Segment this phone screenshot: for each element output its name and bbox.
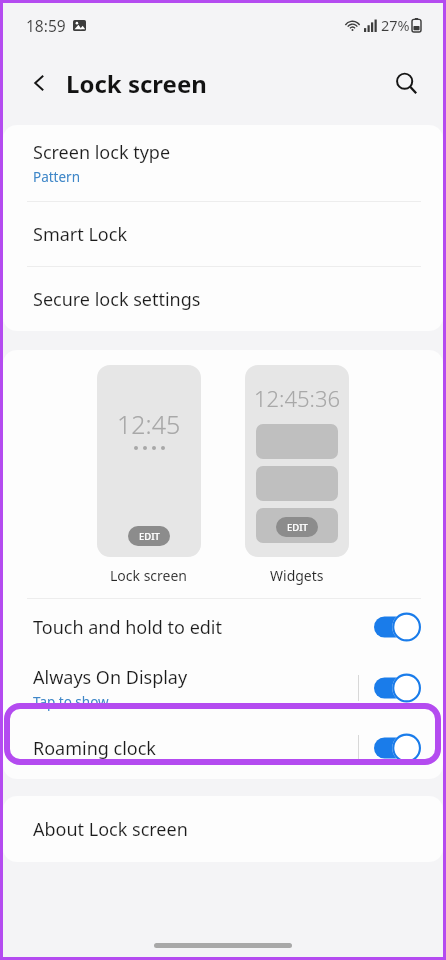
button[interactable]: Secure lock settings [3, 267, 443, 331]
button[interactable]: Toggle on [374, 612, 421, 642]
staticText: Touch and hold to edit [33, 615, 223, 640]
staticText: Smart Lock [33, 222, 127, 247]
staticText: 27% [381, 15, 410, 35]
staticText: Roaming clock [33, 736, 156, 761]
staticText: Tap to show [33, 693, 109, 711]
staticText: About Lock screen [33, 817, 188, 842]
staticText: Secure lock settings [33, 287, 201, 312]
staticText: Lock screen [66, 67, 207, 100]
button[interactable]: Back [17, 60, 63, 106]
staticText: Pattern [33, 168, 81, 186]
button[interactable]: Search [383, 60, 429, 106]
button[interactable]: EDIT [276, 517, 318, 537]
button[interactable]: 12:45 [97, 365, 201, 585]
staticText: EDIT [287, 521, 308, 534]
button[interactable]: Touch and hold to edit [3, 599, 443, 655]
staticText: 12:45 [117, 407, 181, 441]
button[interactable]: Always On Display [3, 655, 443, 721]
button[interactable]: Toggle on [374, 733, 421, 763]
staticText: EDIT [139, 530, 160, 543]
button[interactable]: Screen lock type [3, 125, 443, 201]
staticText: Screen lock type [33, 140, 171, 165]
button[interactable]: 12:45:36 [245, 365, 349, 585]
staticText: Widgets [270, 566, 324, 585]
staticText: Always On Display [33, 665, 188, 690]
staticText: 12:45:36 [254, 383, 341, 413]
button[interactable]: EDIT [128, 526, 170, 546]
button[interactable]: Smart Lock [3, 202, 443, 266]
button[interactable]: Toggle on [374, 673, 421, 703]
button[interactable]: About Lock screen [3, 796, 443, 862]
staticText: 18:59 [26, 15, 66, 36]
staticText: Lock screen [110, 566, 188, 585]
button[interactable]: Roaming clock [3, 721, 443, 775]
